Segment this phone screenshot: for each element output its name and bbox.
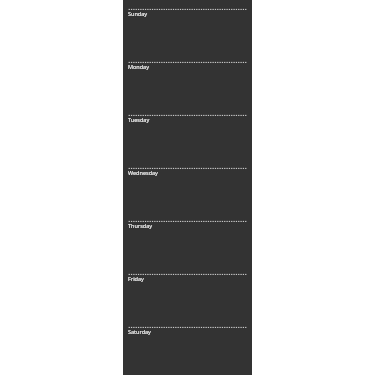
staticText: Thursday xyxy=(128,222,153,229)
staticText: Friday xyxy=(128,275,144,282)
button[interactable]: Thursday xyxy=(123,221,252,274)
staticText: Wednesday xyxy=(128,169,158,176)
button[interactable]: Wednesday xyxy=(123,168,252,221)
button[interactable]: Saturday xyxy=(123,327,252,375)
staticText: Monday xyxy=(128,63,149,70)
button[interactable]: Friday xyxy=(123,274,252,327)
button[interactable]: Sunday xyxy=(123,9,252,62)
staticText: Sunday xyxy=(128,10,148,17)
staticText: Tuesday xyxy=(128,116,150,123)
button[interactable]: Monday xyxy=(123,62,252,115)
staticText: Saturday xyxy=(128,328,151,335)
button[interactable]: Tuesday xyxy=(123,115,252,168)
